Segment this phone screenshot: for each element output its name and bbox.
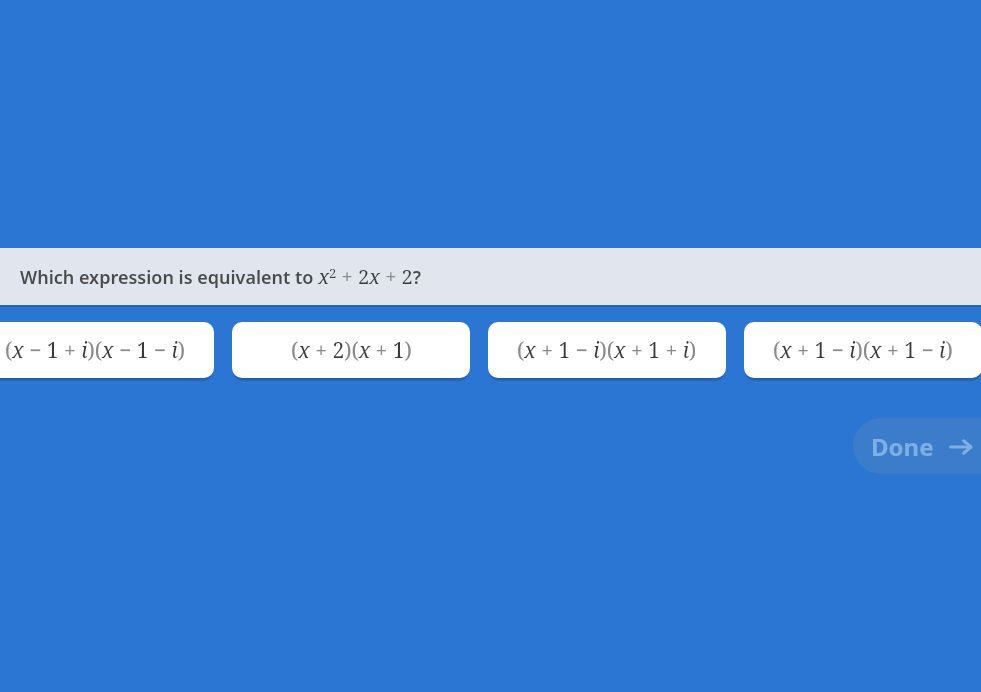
staticText: (x + 1 − i)(x + 1 − i) [773, 336, 953, 365]
staticText: (x − 1 + i)(x − 1 − i) [5, 336, 186, 365]
button[interactable]: (x + 1 − i)(x + 1 − i) [744, 322, 981, 378]
button[interactable]: (x − 1 + i)(x − 1 − i) [0, 322, 214, 378]
staticText: (x + 1 − i)(x + 1 + i) [517, 336, 697, 365]
button[interactable]: (x + 1 − i)(x + 1 + i) [488, 322, 726, 378]
button[interactable]: Done [853, 418, 981, 474]
staticText: Which expression is equivalent to x2 + 2… [20, 263, 422, 290]
button[interactable]: (x + 2)(x + 1) [232, 322, 470, 378]
staticText: Done [871, 430, 934, 463]
staticText: (x + 2)(x + 1) [291, 336, 412, 365]
